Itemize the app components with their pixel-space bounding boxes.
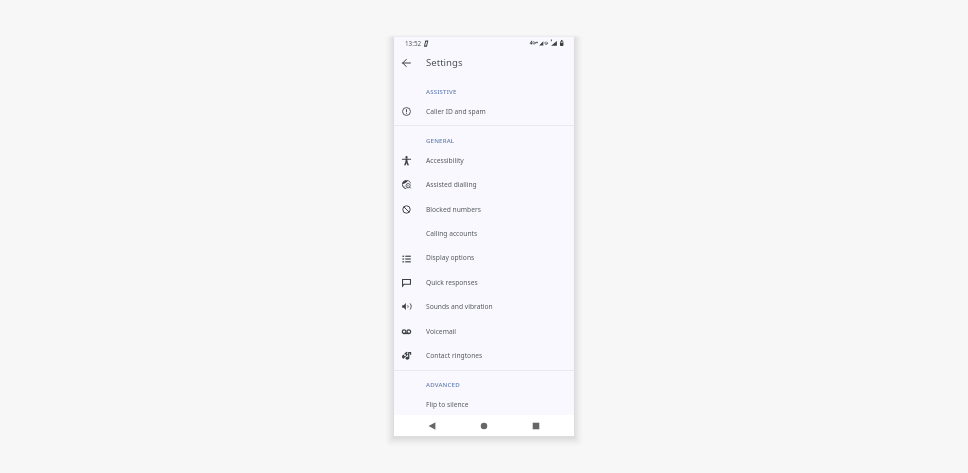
button[interactable]: Calling accounts [394,221,574,245]
staticText: Voicemail [426,327,457,336]
staticText: Settings [426,56,463,69]
button[interactable]: Flip to silence [394,392,574,416]
button[interactable]: Back [422,415,442,435]
button[interactable]: Blocked numbers [394,197,574,221]
staticText: Assisted dialling [426,180,477,189]
staticText: Blocked numbers [426,205,481,214]
staticText: Caller ID and spam [426,107,486,116]
button[interactable]: Display options [394,245,574,269]
button[interactable]: Accessibility [394,148,574,172]
staticText: 13:52 [405,39,422,48]
button[interactable]: Recent apps [526,415,546,435]
staticText: Quick responses [426,278,478,287]
button[interactable]: Back [394,51,419,76]
button[interactable]: Contact ringtones [394,343,574,367]
staticText: Display options [426,253,475,262]
button[interactable]: Assisted dialling [394,172,574,196]
staticText: Accessibility [426,156,464,165]
staticText: Contact ringtones [426,351,483,360]
staticText: ADVANCED [426,380,460,388]
staticText: Flip to silence [426,400,469,409]
button[interactable]: Home [474,415,494,435]
button[interactable]: Caller ID and spam [394,99,574,123]
button[interactable]: Voicemail [394,319,574,343]
staticText: ASSISTIVE [426,87,457,95]
button[interactable]: Sounds and vibration [394,294,574,318]
staticText: Calling accounts [426,229,478,238]
button[interactable]: Quick responses [394,270,574,294]
staticText: Sounds and vibration [426,302,493,311]
staticText: GENERAL [426,136,455,144]
